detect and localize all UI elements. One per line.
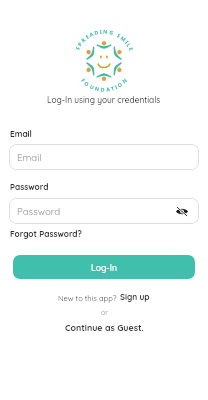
staticText: Continue as Guest. <box>65 322 144 333</box>
button[interactable]: Continue as Guest. <box>65 322 144 333</box>
button[interactable]: Password <box>9 198 199 224</box>
staticText: Log-In using your credentials <box>47 95 161 105</box>
staticText: Email <box>10 129 32 139</box>
button[interactable]: Sign up <box>120 292 150 302</box>
staticText: Sign up <box>120 292 150 302</box>
button[interactable]: Show password <box>173 202 191 220</box>
staticText: New to this app? <box>58 293 117 302</box>
button[interactable]: Email <box>9 144 199 170</box>
staticText: or <box>101 308 108 317</box>
staticText: Forgot Password? <box>10 229 82 239</box>
staticText: Email <box>17 151 42 163</box>
staticText: Password <box>17 205 61 217</box>
staticText: Log-In <box>91 262 117 273</box>
button[interactable]: Forgot Password? <box>10 229 82 239</box>
staticText: Password <box>10 182 49 192</box>
button[interactable]: Log-In <box>13 255 195 279</box>
